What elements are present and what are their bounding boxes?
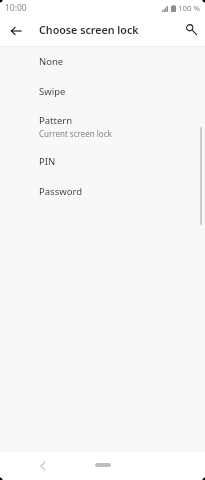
button[interactable]: Pattern [0, 108, 205, 148]
button[interactable]: None [0, 48, 205, 78]
button[interactable]: Back [32, 455, 54, 477]
staticText: Password [39, 185, 82, 198]
button[interactable]: PIN [0, 148, 205, 178]
button[interactable]: Swipe [0, 78, 205, 108]
staticText: Current screen lock [39, 128, 112, 139]
button[interactable]: Home [95, 463, 111, 467]
staticText: Choose screen lock [39, 23, 139, 38]
staticText: Swipe [39, 85, 66, 98]
staticText: None [39, 55, 64, 68]
staticText: 100 % [178, 3, 200, 14]
staticText: PIN [39, 155, 56, 168]
button[interactable]: Search [179, 17, 203, 41]
staticText: Pattern [39, 114, 73, 127]
button[interactable]: Password [0, 178, 205, 208]
staticText: 10:00 [5, 2, 27, 14]
button[interactable]: Back [4, 19, 28, 43]
